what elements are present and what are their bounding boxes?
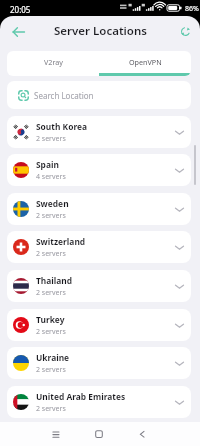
staticText: 86% [185, 4, 199, 14]
button[interactable]: Home [89, 430, 109, 439]
staticText: United Arab Emirates [36, 391, 126, 402]
button[interactable]: Thailand [7, 270, 191, 302]
button[interactable]: Back [9, 22, 29, 42]
button[interactable]: Ukraine [7, 347, 191, 379]
button[interactable]: South Korea [7, 116, 191, 148]
staticText: Spain [36, 159, 59, 170]
staticText: 2 servers [36, 288, 66, 298]
button[interactable]: OpenVPN [99, 51, 191, 73]
staticText: Sweden [36, 198, 69, 209]
staticText: 2 servers [36, 327, 66, 337]
staticText: 2 servers [36, 249, 66, 259]
staticText: 2 servers [36, 211, 66, 221]
staticText: 2 servers [36, 365, 66, 375]
button[interactable]: Refresh [180, 26, 191, 37]
staticText: Thailand [36, 275, 73, 286]
button[interactable]: V2ray [7, 51, 99, 73]
button[interactable]: United Arab Emirates [7, 386, 191, 418]
staticText: OpenVPN [129, 57, 162, 67]
staticText: 2 servers [36, 134, 66, 144]
staticText: Search Location [34, 90, 94, 101]
staticText: 20:05 [10, 4, 31, 15]
button[interactable]: Back [132, 430, 152, 439]
button[interactable]: Recent apps [46, 430, 66, 439]
staticText: 4 servers [36, 172, 66, 182]
button[interactable]: Sweden [7, 193, 191, 225]
staticText: 2 servers [36, 404, 66, 414]
staticText: Switzerland [36, 236, 86, 247]
button[interactable]: Spain [7, 154, 191, 186]
staticText: Ukraine [36, 352, 70, 363]
button[interactable]: Switzerland [7, 231, 191, 263]
button[interactable]: Turkey [7, 309, 191, 341]
staticText: V2ray [44, 57, 63, 67]
staticText: Server Locations [54, 23, 147, 39]
button[interactable]: Search Location [7, 81, 191, 109]
staticText: Turkey [36, 314, 65, 325]
staticText: South Korea [36, 121, 88, 132]
